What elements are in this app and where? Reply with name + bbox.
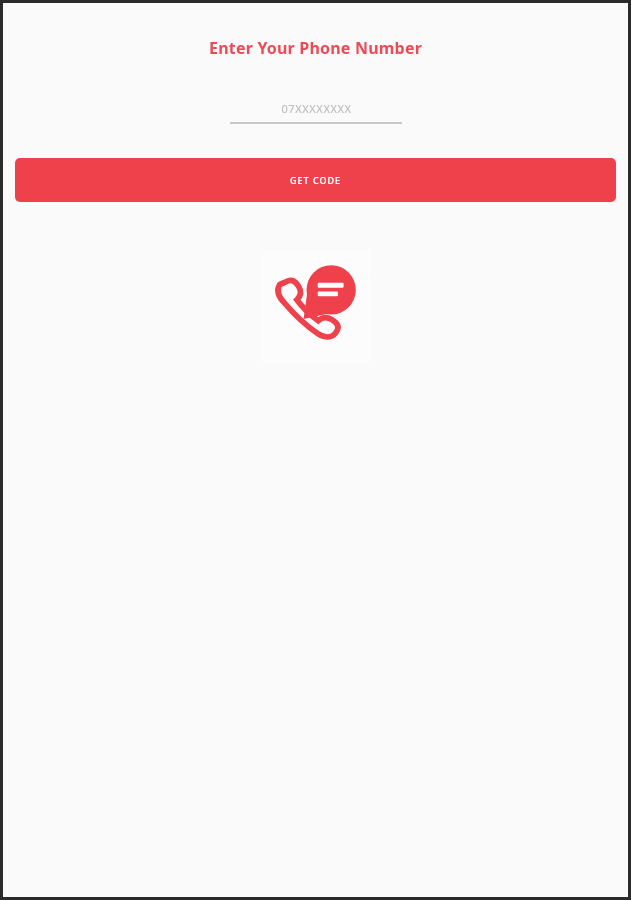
other: Call and message	[270, 260, 362, 352]
staticText: 07XXXXXXXX	[281, 101, 352, 116]
button[interactable]: 07XXXXXXXX	[230, 101, 402, 124]
staticText: GET CODE	[290, 174, 342, 186]
button[interactable]: GET CODE	[15, 158, 616, 202]
staticText: Enter Your Phone Number	[209, 37, 422, 59]
